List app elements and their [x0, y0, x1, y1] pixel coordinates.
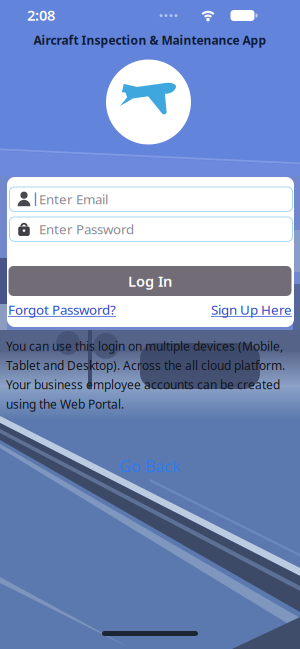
button[interactable]: Go Back [119, 455, 181, 477]
button[interactable]: Enter Password [9, 217, 292, 241]
staticText: Enter Email [39, 190, 108, 208]
staticText: Forgot Password? [8, 301, 116, 318]
staticText: Go Back [119, 455, 181, 477]
button[interactable]: Log In [8, 266, 291, 296]
staticText: Aircraft Inspection & Maintenance App [33, 32, 266, 48]
staticText: 2:08 [27, 5, 55, 25]
staticText: Sign Up Here [211, 301, 292, 318]
staticText: Enter Password [39, 220, 134, 238]
staticText: You can use this login on multiple devic… [6, 338, 285, 412]
button[interactable]: Forgot Password? [8, 301, 116, 318]
button[interactable]: Sign Up Here [211, 301, 292, 318]
button[interactable]: Enter Email [9, 187, 292, 211]
staticText: Log In [128, 271, 172, 291]
